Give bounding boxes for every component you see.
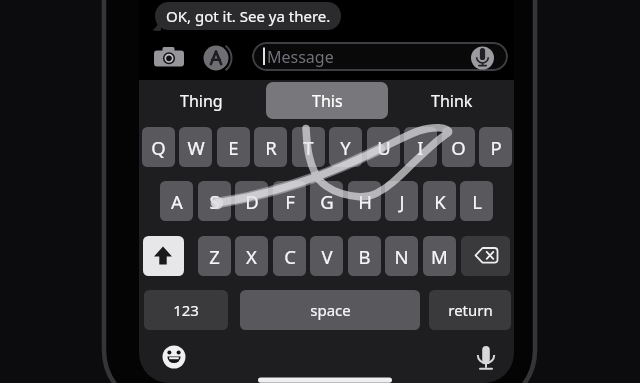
- button[interactable]: X: [235, 236, 268, 276]
- button[interactable]: L: [460, 181, 493, 221]
- button[interactable]: Think: [389, 82, 514, 119]
- button[interactable]: Q: [142, 127, 175, 167]
- staticText: return: [448, 300, 493, 320]
- staticText: Q: [151, 135, 166, 160]
- staticText: Think: [431, 90, 473, 112]
- staticText: C: [284, 244, 296, 269]
- button[interactable]: Z: [198, 236, 231, 276]
- button[interactable]: [461, 236, 510, 276]
- staticText: Thing: [180, 90, 223, 112]
- staticText: T: [303, 135, 314, 160]
- staticText: A: [171, 189, 183, 214]
- staticText: D: [245, 189, 259, 214]
- staticText: E: [228, 135, 239, 160]
- staticText: Message: [267, 46, 334, 68]
- staticText: M: [431, 244, 448, 269]
- staticText: This: [312, 90, 343, 112]
- button[interactable]: return: [429, 290, 511, 330]
- staticText: J: [399, 189, 405, 214]
- button[interactable]: F: [273, 181, 306, 221]
- button[interactable]: P: [479, 127, 512, 167]
- staticText: K: [434, 189, 446, 214]
- staticText: Z: [209, 244, 220, 269]
- staticText: B: [358, 244, 371, 269]
- staticText: O: [451, 135, 466, 160]
- button[interactable]: B: [348, 236, 381, 276]
- button[interactable]: E: [217, 127, 250, 167]
- staticText: I: [417, 135, 424, 160]
- button[interactable]: 123: [144, 290, 228, 330]
- staticText: V: [321, 244, 333, 269]
- button[interactable]: G: [310, 181, 343, 221]
- button[interactable]: R: [254, 127, 287, 167]
- button[interactable]: T: [292, 127, 325, 167]
- button[interactable]: Message: [252, 42, 508, 71]
- staticText: P: [490, 135, 502, 160]
- button[interactable]: S: [198, 181, 231, 221]
- button[interactable]: D: [235, 181, 268, 221]
- button[interactable]: N: [385, 236, 418, 276]
- button[interactable]: A: [160, 181, 193, 221]
- staticText: space: [310, 300, 351, 320]
- button[interactable]: This: [266, 82, 388, 119]
- button[interactable]: C: [273, 236, 306, 276]
- staticText: 123: [173, 300, 199, 320]
- button[interactable]: Thing: [139, 82, 264, 119]
- staticText: F: [285, 189, 295, 214]
- button[interactable]: K: [423, 181, 456, 221]
- button[interactable]: U: [367, 127, 400, 167]
- button[interactable]: V: [310, 236, 343, 276]
- staticText: OK, got it. See ya there.: [166, 6, 331, 26]
- button[interactable]: W: [179, 127, 212, 167]
- staticText: S: [209, 189, 220, 214]
- button[interactable]: [471, 340, 501, 372]
- staticText: X: [246, 244, 257, 269]
- staticText: N: [394, 244, 409, 269]
- button[interactable]: M: [423, 236, 456, 276]
- button[interactable]: H: [348, 181, 381, 221]
- staticText: R: [265, 135, 277, 160]
- staticText: U: [377, 135, 391, 160]
- button[interactable]: [159, 342, 189, 372]
- staticText: W: [187, 135, 205, 160]
- button[interactable]: J: [385, 181, 418, 221]
- staticText: G: [320, 189, 334, 214]
- staticText: L: [472, 189, 482, 214]
- staticText: H: [358, 189, 372, 214]
- button[interactable]: I: [404, 127, 437, 167]
- button[interactable]: Y: [329, 127, 362, 167]
- button[interactable]: space: [240, 290, 420, 330]
- button[interactable]: [143, 236, 184, 276]
- staticText: Y: [340, 135, 351, 160]
- button[interactable]: O: [442, 127, 475, 167]
